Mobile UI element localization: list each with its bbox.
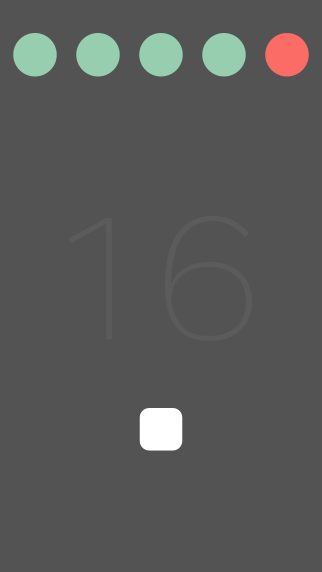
button[interactable]: Tap tile [140,408,182,450]
